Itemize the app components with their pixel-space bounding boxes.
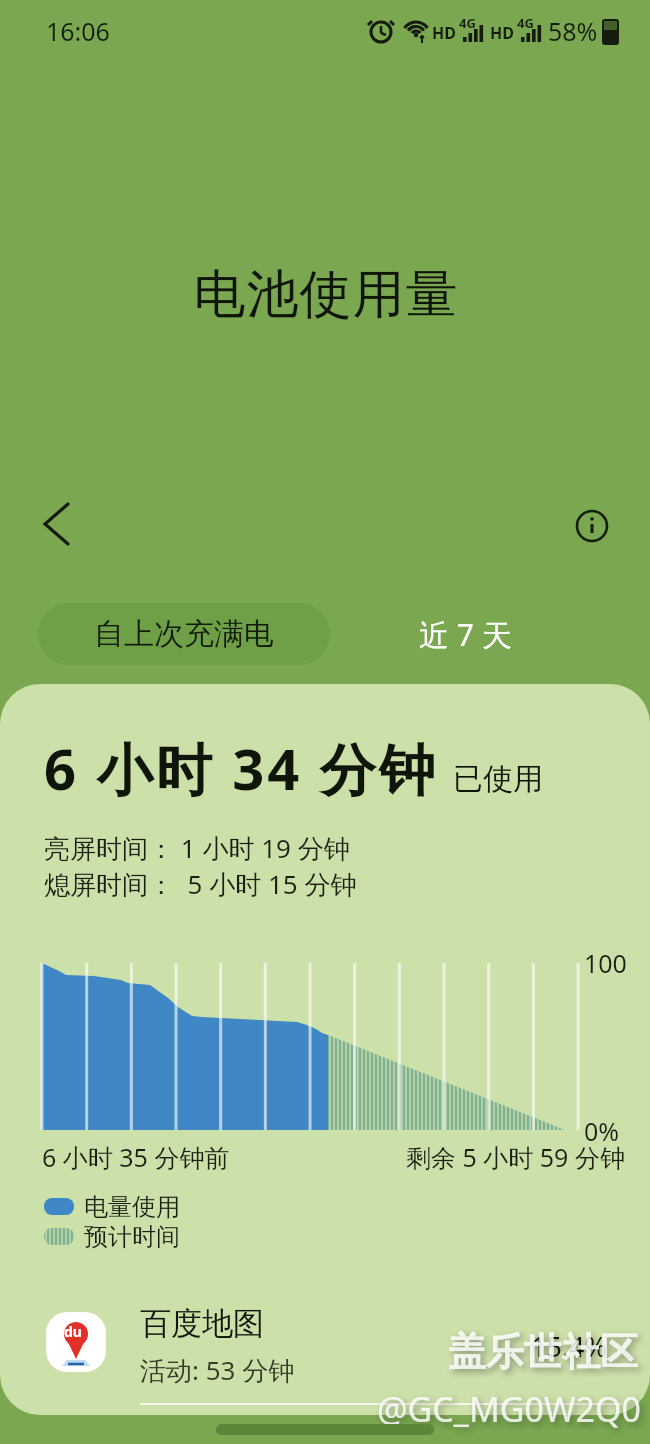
staticText: 电量使用 <box>84 1192 180 1222</box>
staticText: 熄屏时间： 5 小时 15 分钟 <box>44 866 357 902</box>
staticText: 58% <box>548 14 598 48</box>
staticText: 15.4% <box>531 1328 608 1365</box>
staticText: HD <box>432 22 456 44</box>
staticText: 电池使用量 <box>193 262 458 328</box>
staticText: 4G <box>459 14 476 32</box>
button[interactable]: du <box>0 1290 650 1404</box>
staticText: 活动: 53 分钟 <box>140 1352 295 1388</box>
staticText: 6 小时 34 分钟 <box>44 730 438 806</box>
staticText: 盖乐世社区 <box>448 1328 638 1376</box>
button[interactable] <box>570 502 618 550</box>
button[interactable]: 近 7 天 <box>390 603 540 665</box>
staticText: du <box>64 1322 82 1341</box>
staticText: 亮屏时间： 1 小时 19 分钟 <box>44 830 350 866</box>
button[interactable] <box>28 492 88 552</box>
staticText: 已使用 <box>453 760 543 798</box>
staticText: 预计时间 <box>84 1222 180 1252</box>
staticText: 自上次充满电 <box>94 615 274 653</box>
staticText: 4G <box>517 14 534 32</box>
button[interactable]: 自上次充满电 <box>38 603 330 665</box>
staticText: HD <box>490 22 514 44</box>
staticText: @GC_MG0W2Q0 <box>377 1386 642 1432</box>
staticText: 百度地图 <box>140 1304 264 1343</box>
staticText: 16:06 <box>46 14 110 48</box>
staticText: 0% <box>584 1114 620 1148</box>
staticText: 近 7 天 <box>419 614 512 655</box>
staticText: 6 小时 35 分钟前 <box>42 1140 230 1174</box>
staticText: 剩余 5 小时 59 分钟 <box>406 1140 625 1174</box>
staticText: 100 <box>584 946 627 980</box>
